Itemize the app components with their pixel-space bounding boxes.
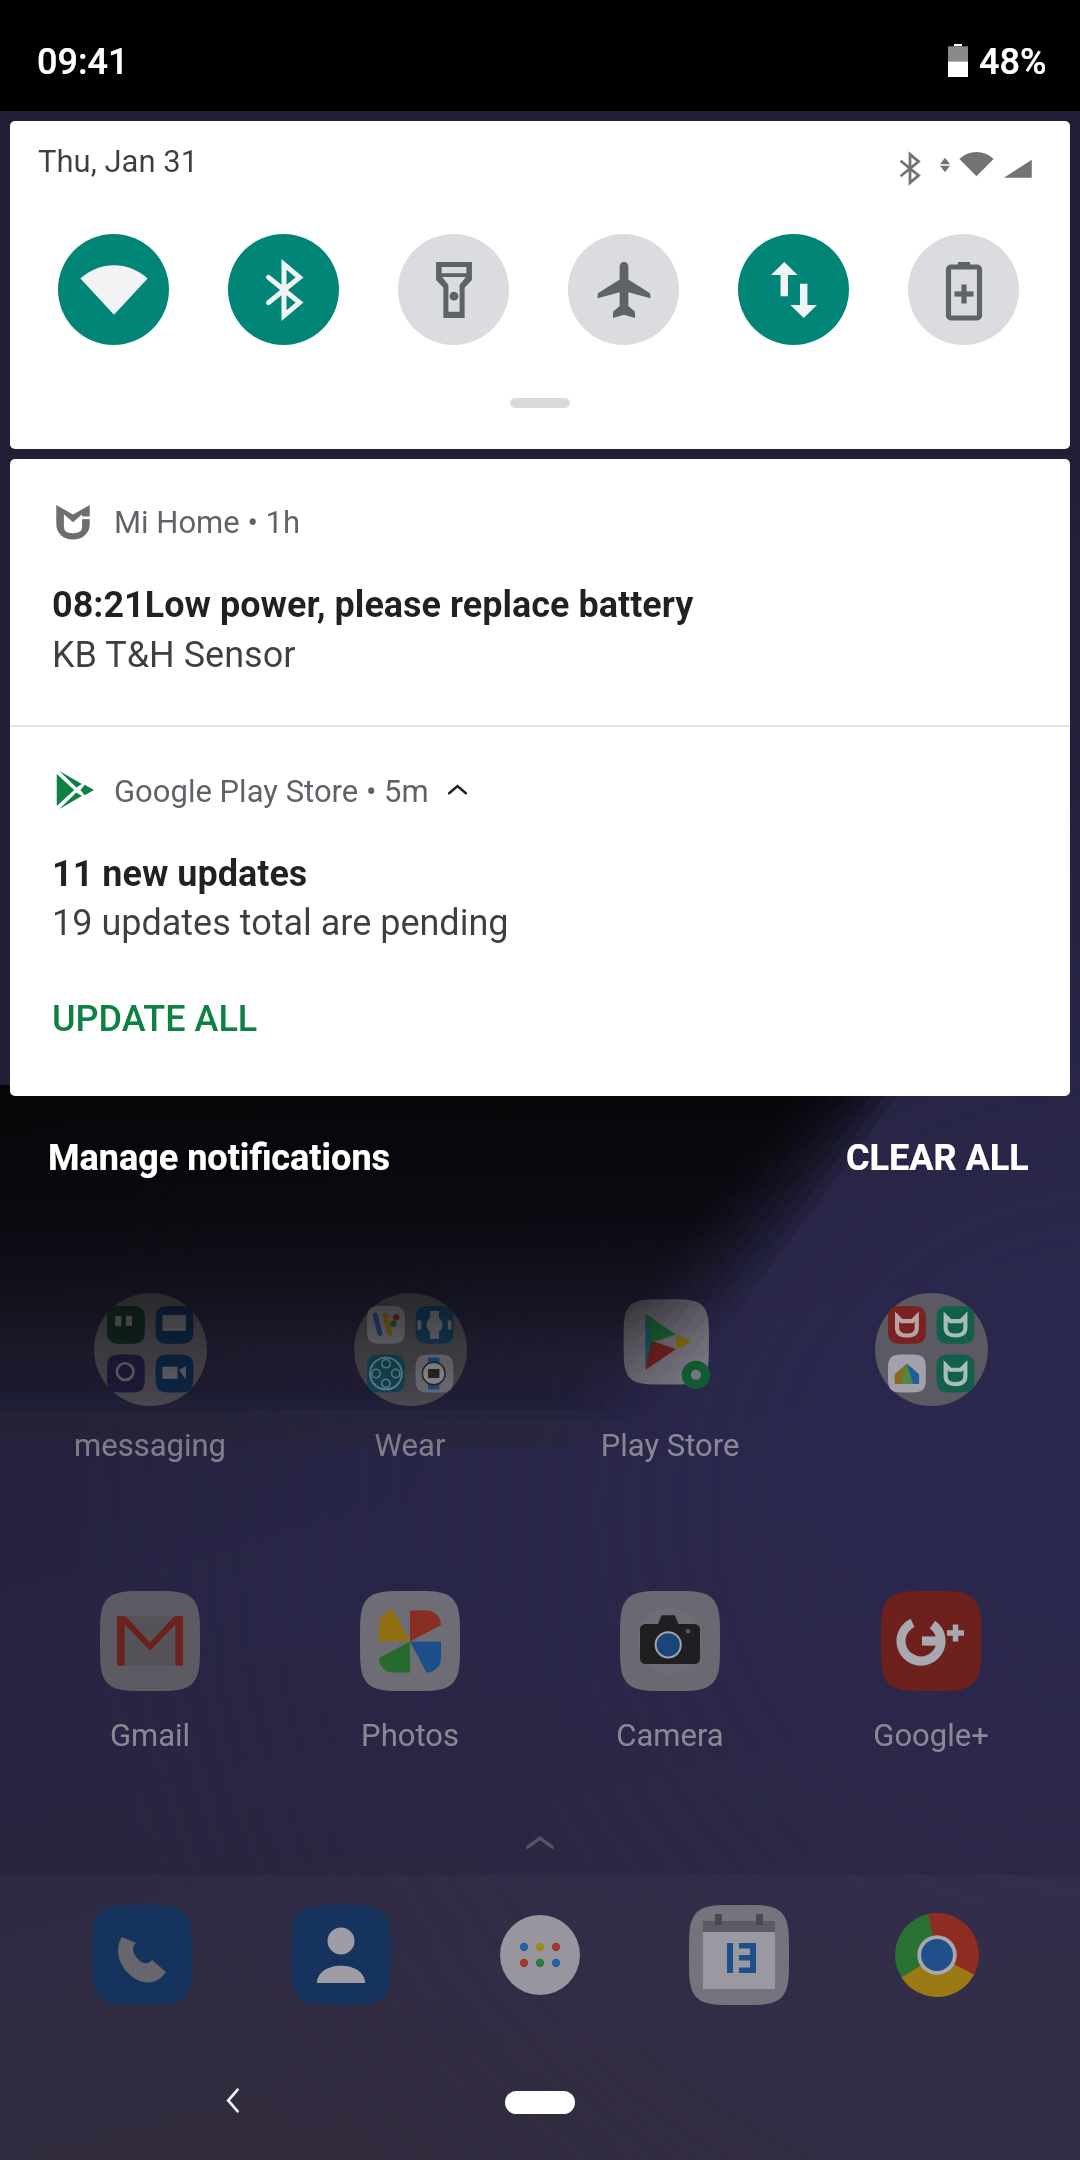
button[interactable]: Phone	[92, 1905, 192, 2005]
staticText: Google Play Store • 5m	[114, 773, 429, 809]
button[interactable]: Manage notifications	[48, 1137, 391, 1179]
staticText: Gmail	[56, 1717, 244, 1753]
staticText: Wear	[316, 1427, 504, 1463]
button[interactable]: Chrome	[887, 1905, 987, 2005]
staticText: 08:21Low power, please replace battery	[52, 584, 694, 626]
button[interactable]: Open app drawer	[500, 1810, 580, 1876]
button[interactable]: Wear	[316, 1285, 504, 1470]
staticText: 48%	[979, 41, 1047, 83]
button[interactable]: Home	[480, 2060, 600, 2140]
button[interactable]: Google+	[837, 1580, 1025, 1765]
staticText: Thu, Jan 31	[38, 143, 199, 179]
button[interactable]: Flashlight	[398, 234, 509, 345]
button[interactable]: Contacts	[291, 1905, 391, 2005]
staticText: Camera	[576, 1717, 764, 1753]
button[interactable]: Photos	[316, 1580, 504, 1765]
staticText: Google+	[837, 1717, 1025, 1753]
staticText: Photos	[316, 1717, 504, 1753]
staticText: 11 new updates	[52, 853, 308, 895]
staticText: KB T&H Sensor	[52, 634, 296, 676]
button[interactable]: Mi Home • 1h	[10, 459, 1070, 726]
button[interactable]: Camera	[576, 1580, 764, 1765]
button[interactable]: CLEAR ALL	[846, 1137, 1029, 1179]
staticText: Play Store	[576, 1427, 764, 1463]
staticText: messaging	[56, 1427, 244, 1463]
button[interactable]: Bluetooth	[228, 234, 339, 345]
button[interactable]: Gmail	[56, 1580, 244, 1765]
button[interactable]: Wi-Fi	[58, 234, 169, 345]
button[interactable]: UPDATE ALL	[52, 998, 258, 1040]
button[interactable]: Back	[190, 2060, 280, 2140]
button[interactable]: Battery saver	[908, 234, 1019, 345]
staticText: Mi Home • 1h	[114, 504, 301, 540]
button[interactable]: messaging	[56, 1285, 244, 1470]
staticText: 09:41	[37, 41, 129, 83]
button[interactable]: Calendar	[689, 1905, 789, 2005]
button[interactable]: Play Store	[576, 1285, 764, 1470]
staticText: 19 updates total are pending	[52, 902, 509, 944]
button[interactable]: Airplane mode	[568, 234, 679, 345]
button[interactable]: Smart home	[837, 1285, 1025, 1470]
button[interactable]: All apps	[490, 1905, 590, 2005]
button[interactable]: Google Play Store • 5m	[10, 727, 1070, 1095]
button[interactable]: Mobile data	[738, 234, 849, 345]
